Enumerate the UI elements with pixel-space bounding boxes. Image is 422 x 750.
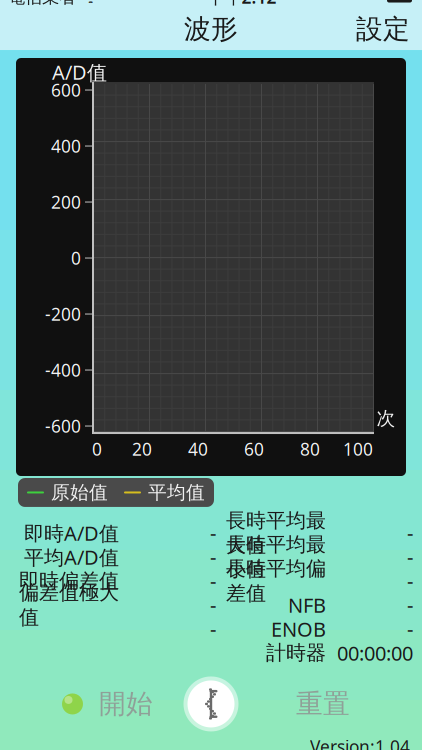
- staticText: 波形: [184, 13, 238, 45]
- staticText: 重置: [296, 688, 350, 720]
- staticText: -: [407, 544, 413, 570]
- staticText: NFB: [288, 592, 326, 618]
- staticText: 40: [188, 437, 208, 460]
- staticText: 200: [51, 190, 81, 213]
- staticText: A/D值: [52, 59, 107, 85]
- staticText: 100: [343, 437, 373, 460]
- staticText: -: [210, 520, 216, 546]
- staticText: -: [407, 520, 413, 546]
- staticText: 電信業者: [8, 0, 76, 8]
- staticText: 平均A/D值: [24, 544, 119, 570]
- staticText: 400: [51, 134, 81, 157]
- staticText: -400: [45, 358, 81, 381]
- staticText: 偏差值極大值: [19, 580, 119, 629]
- staticText: 80: [300, 437, 320, 460]
- button[interactable]: 重置: [280, 678, 366, 730]
- button[interactable]: Bluetooth: [182, 675, 240, 733]
- staticText: -: [407, 568, 413, 594]
- staticText: -600: [45, 414, 81, 437]
- staticText: 計時器: [266, 641, 326, 665]
- staticText: 原始值: [51, 481, 108, 504]
- staticText: 下午2:12: [207, 0, 276, 8]
- staticText: 20: [132, 437, 152, 460]
- staticText: 0: [92, 437, 102, 460]
- button[interactable]: 開始: [52, 678, 163, 730]
- staticText: -: [210, 568, 216, 594]
- staticText: 60: [244, 437, 264, 460]
- staticText: 長時平均偏差值: [226, 556, 326, 605]
- staticText: 00:00:00: [337, 640, 413, 666]
- staticText: 長時平均最小值: [226, 532, 326, 581]
- staticText: -: [210, 592, 216, 618]
- staticText: ᯤ: [76, 0, 97, 7]
- staticText: 即時偏差值: [19, 569, 119, 593]
- button[interactable]: 設定: [344, 5, 422, 53]
- staticText: 即時A/D值: [24, 520, 119, 546]
- staticText: -: [210, 544, 216, 570]
- staticText: 平均值: [148, 481, 205, 504]
- staticText: -: [407, 616, 413, 642]
- staticText: -200: [45, 302, 81, 325]
- staticText: 600: [51, 78, 81, 101]
- staticText: -: [210, 616, 216, 642]
- staticText: 次: [376, 407, 395, 430]
- staticText: ENOB: [271, 616, 326, 642]
- staticText: 設定: [356, 13, 410, 45]
- staticText: 開始: [99, 688, 153, 720]
- staticText: 長時平均最大值: [226, 508, 326, 557]
- staticText: 0: [71, 246, 81, 269]
- staticText: Version:1.04: [310, 735, 410, 750]
- staticText: -: [407, 592, 413, 618]
